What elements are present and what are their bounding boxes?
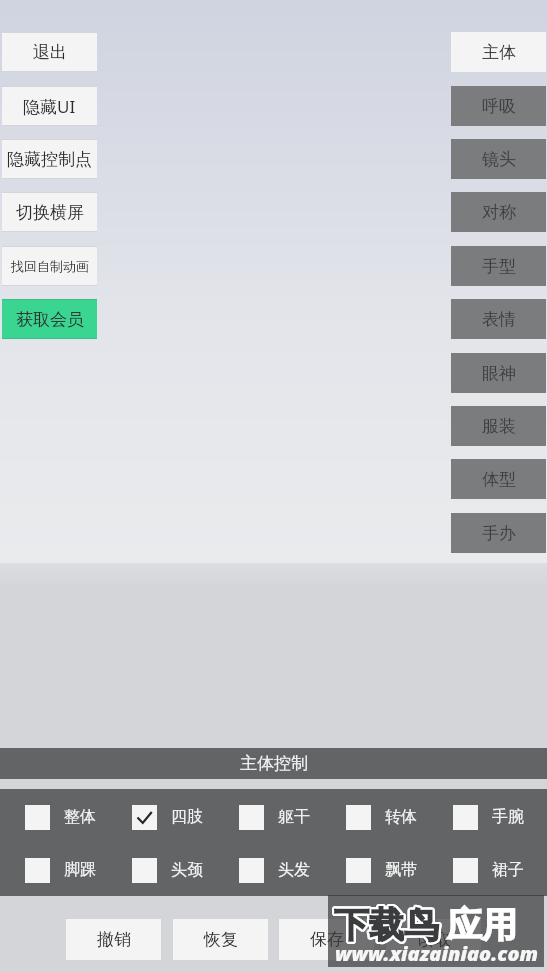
button[interactable]: 未选中 整体 <box>0 804 107 830</box>
staticText: 下载鸟 <box>333 905 438 949</box>
staticText: 下载鸟 <box>336 902 441 946</box>
staticText: 躯干 <box>278 807 310 827</box>
staticText: 恢复 <box>204 929 238 950</box>
staticText: 获取会员 <box>16 309 84 330</box>
button[interactable]: 未选中 脚踝 <box>0 857 107 883</box>
button[interactable]: 撤销 <box>66 919 161 960</box>
staticText: 镜头 <box>482 149 516 170</box>
staticText: 四肢 <box>171 807 203 827</box>
button[interactable]: 切换横屏 <box>2 192 97 232</box>
staticText: 下载鸟 <box>332 904 437 948</box>
button[interactable]: 镜头 <box>451 139 546 179</box>
button[interactable]: 退出 <box>2 32 97 72</box>
staticText: 隐藏控制点 <box>7 149 92 170</box>
button[interactable]: 手办 <box>451 513 546 553</box>
other: 已选中 四肢 <box>132 805 157 830</box>
staticText: 下载鸟 <box>335 901 440 945</box>
button[interactable]: 未选中 头发 <box>214 857 321 883</box>
button[interactable]: 已选中 四肢 <box>107 804 214 830</box>
staticText: 读取 <box>417 929 451 950</box>
staticText: 主体 <box>482 42 516 63</box>
staticText: 服装 <box>482 416 516 437</box>
staticText: 下载鸟 <box>335 905 440 949</box>
staticText: www.xiazainiao.com <box>335 940 539 967</box>
staticText: 下载鸟 <box>334 901 439 945</box>
button[interactable]: 恢复 <box>173 919 268 960</box>
staticText: 下载鸟 <box>335 904 440 948</box>
staticText: 对称 <box>482 202 516 223</box>
staticText: 下载鸟 <box>334 903 439 947</box>
button[interactable]: 服装 <box>451 406 546 446</box>
button[interactable]: 未选中 手腕 <box>428 804 535 830</box>
staticText: 表情 <box>482 309 516 330</box>
staticText: 脚踝 <box>64 860 96 880</box>
staticText: 手办 <box>482 523 516 544</box>
button[interactable]: 读取 <box>386 919 481 960</box>
button[interactable]: 手型 <box>451 246 546 286</box>
staticText: 飘带 <box>385 860 417 880</box>
staticText: 找回自制动画 <box>11 258 89 274</box>
staticText: 头发 <box>278 860 310 880</box>
staticText: 手型 <box>482 256 516 277</box>
staticText: 下载鸟 <box>332 902 437 946</box>
staticText: 下载鸟 <box>333 903 438 947</box>
button[interactable]: 隐藏控制点 <box>2 139 97 179</box>
staticText: 下载鸟 <box>333 902 438 946</box>
staticText: 下载鸟 <box>335 903 440 947</box>
button[interactable]: 未选中 头颈 <box>107 857 214 883</box>
staticText: 手腕 <box>492 807 524 827</box>
staticText: 下载鸟 <box>335 902 440 946</box>
staticText: 下载鸟 <box>334 905 439 949</box>
staticText: 下载鸟 <box>334 903 439 947</box>
staticText: 主体控制 <box>240 753 308 774</box>
staticText: 下载鸟 <box>333 901 438 945</box>
staticText: 退出 <box>33 42 67 63</box>
staticText: 呼吸 <box>482 96 516 117</box>
button[interactable]: 表情 <box>451 299 546 339</box>
button[interactable]: 未选中 裙子 <box>428 857 535 883</box>
button[interactable]: 呼吸 <box>451 86 546 126</box>
staticText: 体型 <box>482 469 516 490</box>
staticText: 头颈 <box>171 860 203 880</box>
button[interactable]: 未选中 躯干 <box>214 804 321 830</box>
button[interactable]: 保存 <box>279 919 374 960</box>
staticText: 下载鸟 <box>334 902 439 946</box>
button[interactable]: 主体控制 <box>0 748 547 779</box>
staticText: 下载鸟 <box>334 904 439 948</box>
button[interactable]: 眼神 <box>451 353 546 393</box>
staticText: 隐藏UI <box>23 95 76 118</box>
button[interactable]: 未选中 飘带 <box>321 857 428 883</box>
staticText: 下载鸟 <box>336 904 441 948</box>
staticText: 整体 <box>64 807 96 827</box>
staticText: 应用 <box>447 903 517 947</box>
staticText: 保存 <box>310 929 344 950</box>
button[interactable]: 获取会员 <box>2 299 97 339</box>
staticText: 下载鸟 <box>333 904 438 948</box>
button[interactable]: 隐藏UI <box>2 86 97 126</box>
button[interactable]: 对称 <box>451 192 546 232</box>
staticText: 转体 <box>385 807 417 827</box>
staticText: 下载鸟 <box>336 903 441 947</box>
button[interactable]: 未选中 转体 <box>321 804 428 830</box>
button[interactable]: 主体 <box>451 32 546 72</box>
staticText: 下载鸟 <box>332 903 437 947</box>
staticText: 眼神 <box>482 363 516 384</box>
staticText: 切换横屏 <box>16 202 84 223</box>
staticText: 撤销 <box>97 929 131 950</box>
button[interactable]: 体型 <box>451 459 546 499</box>
staticText: 裙子 <box>492 860 524 880</box>
button[interactable]: 找回自制动画 <box>2 246 97 286</box>
